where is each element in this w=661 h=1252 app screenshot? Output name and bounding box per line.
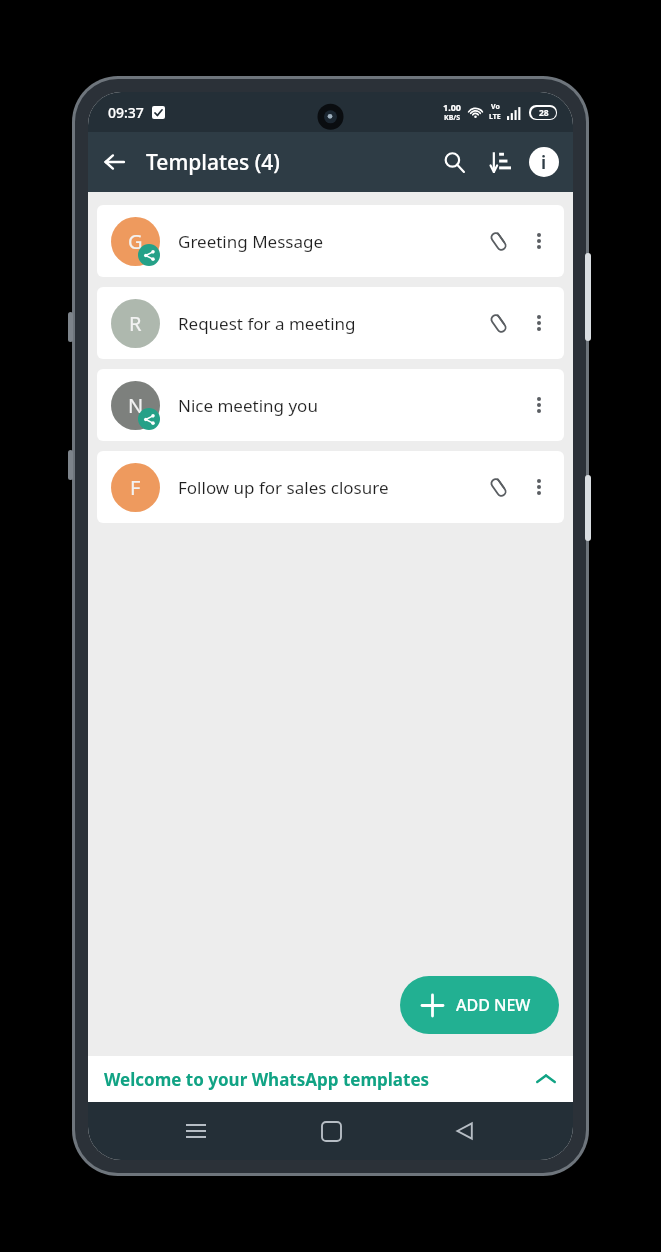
button[interactable]: Welcome to your WhatsApp templates <box>88 1056 573 1102</box>
button[interactable]: Sort <box>477 139 523 185</box>
button[interactable]: Home <box>304 1104 358 1158</box>
button[interactable]: G <box>97 205 564 277</box>
button[interactable]: R <box>97 287 564 359</box>
button[interactable]: Info <box>523 137 565 187</box>
staticText: KB/S <box>444 113 461 123</box>
staticText: Vo <box>491 102 500 112</box>
staticText: 28 <box>539 107 549 119</box>
button[interactable]: N <box>97 369 564 441</box>
button[interactable]: Back <box>92 138 136 186</box>
staticText: N <box>128 392 144 419</box>
staticText: Greeting Message <box>178 230 478 253</box>
button[interactable]: Attachment <box>478 467 518 507</box>
button[interactable]: More options <box>518 220 560 262</box>
staticText: R <box>129 310 142 337</box>
button[interactable]: More options <box>518 384 560 426</box>
staticText: Nice meeting you <box>178 394 478 417</box>
button[interactable]: Attachment <box>478 221 518 261</box>
button[interactable]: F <box>97 451 564 523</box>
button[interactable]: Recent apps <box>169 1104 223 1158</box>
staticText: 1.00 <box>443 101 461 113</box>
staticText: i <box>541 151 547 174</box>
button[interactable]: More options <box>518 466 560 508</box>
button[interactable]: Search <box>431 139 477 185</box>
staticText: LTE <box>489 112 501 122</box>
staticText: F <box>130 474 141 501</box>
staticText: 09:37 <box>108 103 144 122</box>
staticText: Welcome to your WhatsApp templates <box>104 1068 535 1091</box>
staticText: Request for a meeting <box>178 312 478 335</box>
button[interactable]: ADD NEW <box>400 976 559 1034</box>
button[interactable]: Back <box>438 1104 492 1158</box>
staticText: ADD NEW <box>456 994 531 1016</box>
button[interactable]: Attachment <box>478 303 518 343</box>
staticText: Follow up for sales closure <box>178 476 478 499</box>
button[interactable]: More options <box>518 302 560 344</box>
staticText: Templates (4) <box>146 148 280 177</box>
staticText: G <box>128 228 143 255</box>
